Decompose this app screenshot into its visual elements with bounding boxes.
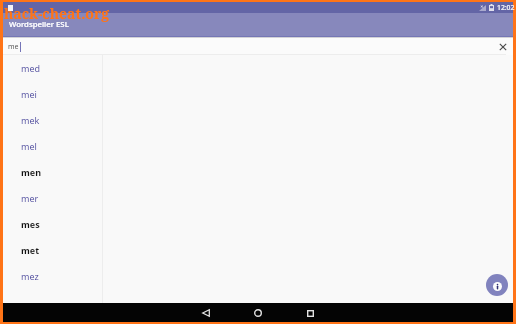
staticText: hack-cheat.org — [4, 4, 110, 23]
staticText: Wordspeller ESL — [9, 19, 69, 30]
staticText: mek — [21, 114, 40, 126]
staticText: mer — [21, 192, 39, 204]
button[interactable]: mes — [3, 211, 102, 237]
button[interactable]: Recent apps — [302, 305, 318, 321]
button[interactable]: mer — [3, 185, 102, 211]
staticText: 12:02 — [497, 3, 515, 12]
staticText: men — [21, 166, 41, 178]
button[interactable]: Clear search — [498, 42, 508, 52]
button[interactable]: me — [3, 37, 513, 55]
staticText: med — [21, 62, 41, 74]
button[interactable]: men — [3, 159, 102, 185]
staticText: mez — [21, 270, 39, 282]
button[interactable]: mel — [3, 133, 102, 159]
staticText: mel — [21, 140, 37, 152]
button[interactable]: Back — [198, 305, 214, 321]
button[interactable]: mei — [3, 81, 102, 107]
button[interactable]: met — [3, 237, 102, 263]
staticText: met — [21, 244, 40, 256]
staticText: me — [8, 42, 19, 52]
button[interactable]: med — [3, 55, 102, 81]
button[interactable]: mez — [3, 263, 102, 289]
button[interactable]: mek — [3, 107, 102, 133]
staticText: mes — [21, 218, 40, 230]
button[interactable]: Home — [250, 305, 266, 321]
staticText: mei — [21, 88, 37, 100]
button[interactable]: Info — [486, 274, 508, 296]
